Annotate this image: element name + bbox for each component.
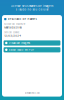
staticText: e laudo no seu celular [15, 8, 48, 11]
button[interactable]: Baixar laudo em PDF [4, 47, 60, 52]
staticText: Resultado de Exames [8, 17, 37, 21]
staticText: Baixar laudo em PDF [9, 48, 34, 51]
staticText: DATA DO EXAME [4, 31, 19, 34]
staticText: Acesse seus exames de imagem [11, 4, 53, 8]
staticText: 12/03/2024 [4, 34, 21, 37]
button[interactable]: Visualizar imagens [4, 40, 60, 46]
staticText: Maria da Silva [4, 26, 21, 29]
staticText: Visualizar imagens [9, 41, 30, 44]
staticText: NOME DO PACIENTE [4, 23, 25, 25]
staticText: Atendimento 24h [24, 92, 39, 95]
